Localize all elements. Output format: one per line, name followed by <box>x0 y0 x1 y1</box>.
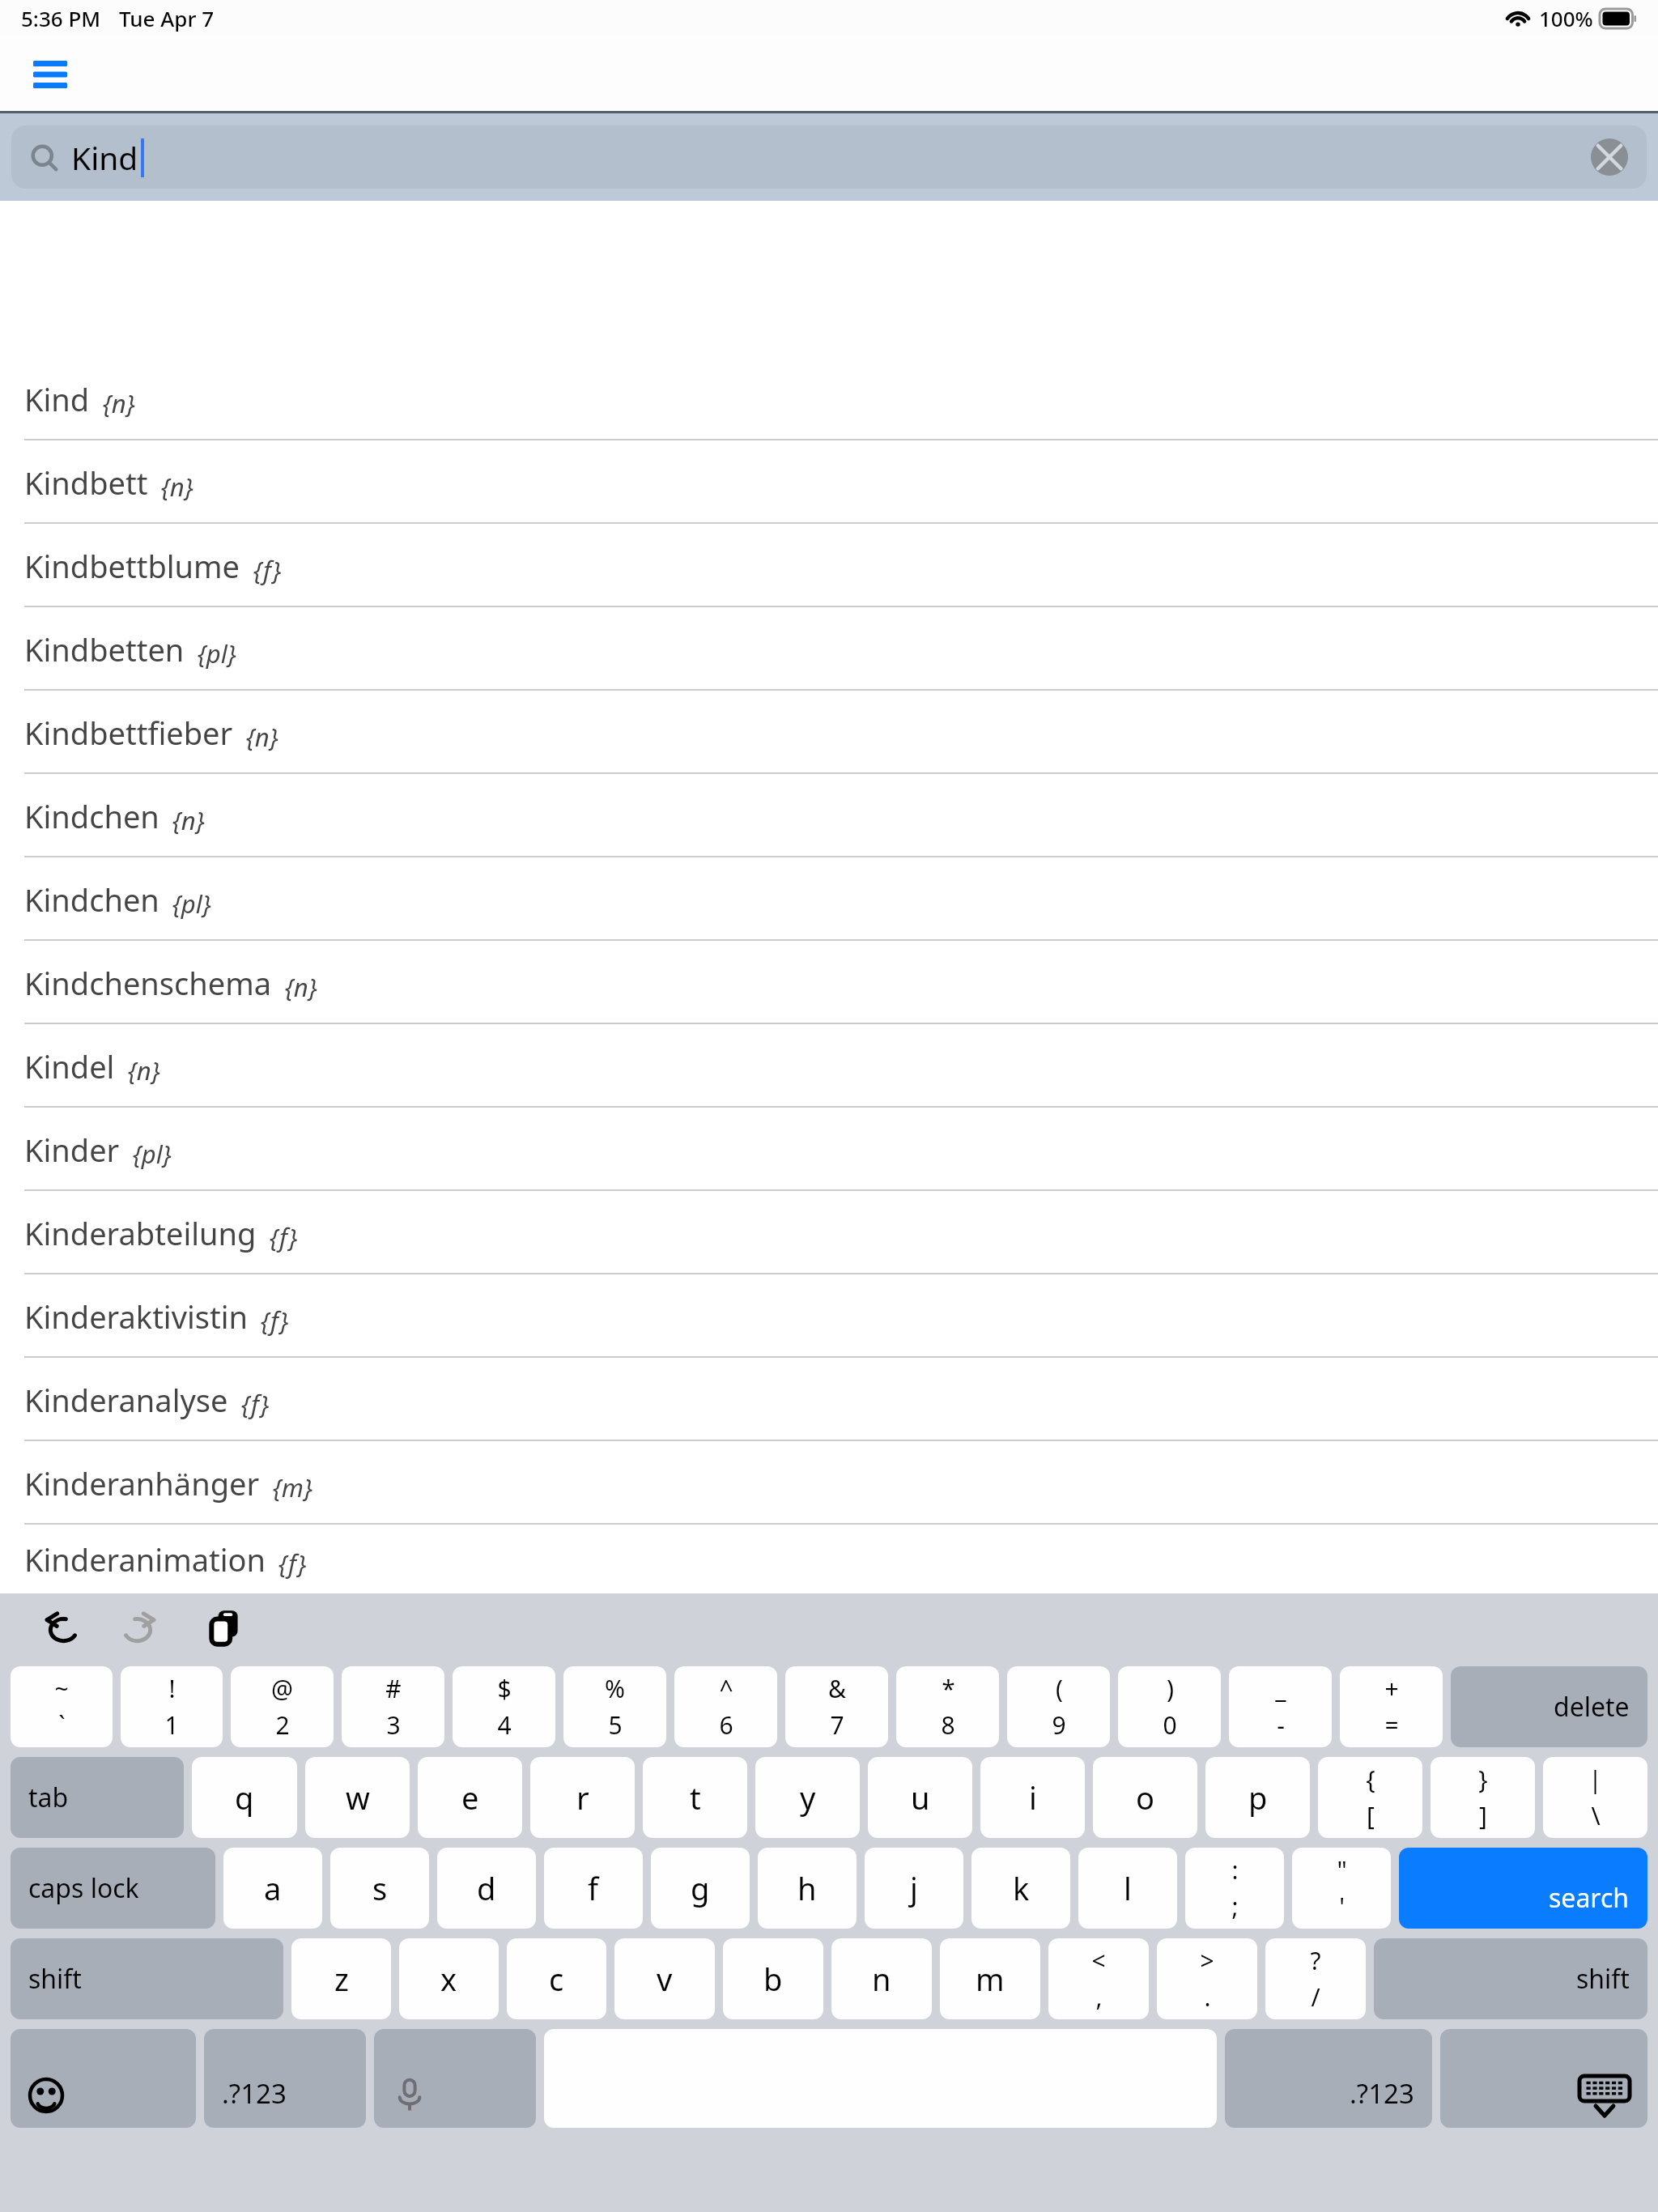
button[interactable]: j <box>865 1848 963 1929</box>
button[interactable]: Kinderanalyse <box>0 1358 1658 1441</box>
staticText: 7 <box>830 1708 844 1742</box>
button[interactable]: shift <box>1374 1938 1647 2019</box>
button[interactable]: f <box>544 1848 643 1929</box>
button[interactable]: Kinderabteilung <box>0 1191 1658 1274</box>
staticText: Kind <box>71 136 138 179</box>
button[interactable]: ~ <box>11 1666 113 1747</box>
button[interactable]: Kindchenschema <box>0 941 1658 1024</box>
button[interactable]: Undo <box>34 1597 94 1657</box>
button[interactable]: m <box>940 1938 1040 2019</box>
button[interactable]: Kindchen <box>0 774 1658 857</box>
button[interactable]: ! <box>121 1666 223 1747</box>
button[interactable]: " <box>1292 1848 1391 1929</box>
button[interactable]: d <box>437 1848 536 1929</box>
button[interactable]: ? <box>1265 1938 1366 2019</box>
button[interactable]: .?123 <box>204 2029 366 2128</box>
button[interactable]: : <box>1185 1848 1284 1929</box>
staticText: 9 <box>1052 1708 1066 1742</box>
button[interactable]: ( <box>1007 1666 1110 1747</box>
button[interactable]: ^ <box>674 1666 777 1747</box>
button[interactable]: x <box>399 1938 499 2019</box>
button[interactable]: Redo <box>107 1597 167 1657</box>
button[interactable]: Kindbett <box>0 440 1658 524</box>
button[interactable]: l <box>1078 1848 1177 1929</box>
button[interactable]: # <box>342 1666 444 1747</box>
button[interactable]: { <box>1318 1757 1422 1838</box>
button[interactable]: + <box>1340 1666 1443 1747</box>
button[interactable]: y <box>755 1757 860 1838</box>
button[interactable]: p <box>1205 1757 1310 1838</box>
button[interactable]: } <box>1431 1757 1535 1838</box>
button[interactable]: Clear search <box>1585 133 1634 181</box>
button[interactable]: & <box>785 1666 888 1747</box>
button[interactable]: ) <box>1118 1666 1221 1747</box>
staticText: a <box>264 1867 282 1909</box>
button[interactable]: Kindbettblume <box>0 524 1658 607</box>
button[interactable]: Kindel <box>0 1024 1658 1108</box>
staticText: b <box>763 1958 783 2000</box>
button[interactable]: e <box>418 1757 522 1838</box>
button[interactable]: h <box>758 1848 857 1929</box>
button[interactable]: b <box>723 1938 823 2019</box>
button[interactable]: Menu <box>21 45 79 104</box>
staticText: e <box>461 1776 479 1819</box>
button[interactable]: k <box>971 1848 1070 1929</box>
button[interactable]: Hide keyboard <box>1440 2029 1647 2128</box>
button[interactable]: Kindbetten <box>0 607 1658 691</box>
button[interactable]: Kindbettfieber <box>0 691 1658 774</box>
button[interactable]: search <box>1399 1848 1647 1929</box>
button[interactable]: * <box>896 1666 999 1747</box>
button[interactable]: q <box>192 1757 297 1838</box>
button[interactable]: tab <box>11 1757 184 1838</box>
button[interactable]: delete <box>1451 1666 1647 1747</box>
button[interactable]: s <box>330 1848 429 1929</box>
button[interactable]: c <box>507 1938 606 2019</box>
button[interactable]: > <box>1157 1938 1257 2019</box>
staticText: {m} <box>273 1470 312 1504</box>
button[interactable]: a <box>223 1848 322 1929</box>
staticText: , <box>1095 1980 1103 2014</box>
button[interactable]: @ <box>231 1666 334 1747</box>
staticText: 4 <box>497 1708 512 1742</box>
button[interactable]: Kinderanimation <box>0 1525 1658 1593</box>
button[interactable]: t <box>643 1757 747 1838</box>
button[interactable]: u <box>868 1757 972 1838</box>
staticText: ` <box>58 1708 66 1742</box>
button[interactable]: o <box>1093 1757 1197 1838</box>
button[interactable]: Kinderanhänger <box>0 1441 1658 1525</box>
button[interactable]: Kinderaktivistin <box>0 1274 1658 1358</box>
button[interactable]: n <box>831 1938 932 2019</box>
staticText: Kinderanhänger <box>24 1462 260 1504</box>
staticText: u <box>911 1776 930 1819</box>
staticText: % <box>605 1672 625 1705</box>
button[interactable]: Emoji <box>11 2029 196 2128</box>
button[interactable]: Paste <box>196 1597 256 1657</box>
button[interactable]: .?123 <box>1225 2029 1432 2128</box>
button[interactable]: | <box>1543 1757 1647 1838</box>
button[interactable] <box>544 2029 1217 2128</box>
button[interactable]: z <box>291 1938 391 2019</box>
staticText: 5:36 PM <box>21 4 101 32</box>
button[interactable]: < <box>1048 1938 1149 2019</box>
button[interactable]: r <box>530 1757 635 1838</box>
button[interactable]: % <box>563 1666 666 1747</box>
button[interactable]: Kinder <box>0 1108 1658 1191</box>
staticText: shift <box>28 1961 82 1997</box>
button[interactable]: Kind <box>0 357 1658 440</box>
button[interactable]: Dictation <box>374 2029 536 2128</box>
staticText: o <box>1136 1776 1154 1819</box>
button[interactable]: v <box>614 1938 715 2019</box>
staticText: h <box>797 1867 817 1909</box>
button[interactable]: shift <box>11 1938 283 2019</box>
button[interactable]: $ <box>453 1666 555 1747</box>
button[interactable]: Kindchen <box>0 857 1658 941</box>
button[interactable]: g <box>651 1848 750 1929</box>
staticText: s <box>372 1867 388 1909</box>
button[interactable]: w <box>305 1757 410 1838</box>
staticText: caps lock <box>28 1870 139 1906</box>
button[interactable]: i <box>980 1757 1085 1838</box>
button[interactable]: _ <box>1229 1666 1332 1747</box>
staticText: Kinderanalyse <box>24 1379 228 1421</box>
button[interactable]: caps lock <box>11 1848 215 1929</box>
button[interactable]: Kind <box>11 125 1647 189</box>
